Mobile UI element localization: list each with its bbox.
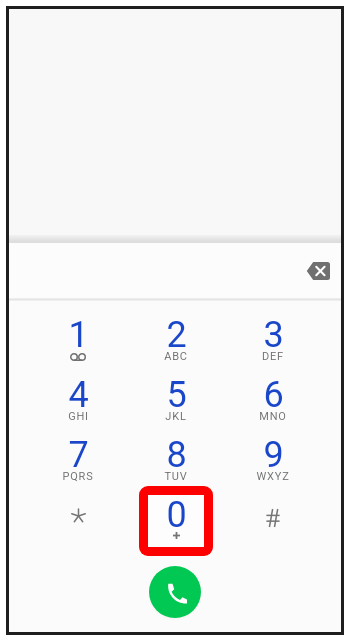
- staticText: 1: [68, 314, 89, 356]
- button[interactable]: 7: [30, 433, 126, 493]
- staticText: JKL: [165, 410, 187, 423]
- staticText: WXYZ: [256, 470, 290, 483]
- button[interactable]: 8: [128, 433, 224, 493]
- staticText: DEF: [262, 350, 284, 363]
- staticText: 3: [263, 314, 284, 356]
- button[interactable]: 4: [30, 373, 126, 433]
- button[interactable]: 5: [128, 373, 224, 433]
- button[interactable]: [225, 493, 321, 563]
- staticText: 2: [166, 314, 187, 356]
- button[interactable]: 2: [128, 313, 224, 373]
- button[interactable]: 3: [225, 313, 321, 373]
- staticText: MNO: [259, 410, 287, 423]
- button[interactable]: Call: [149, 566, 201, 618]
- button[interactable]: 9: [225, 433, 321, 493]
- button[interactable]: [30, 493, 126, 563]
- staticText: ABC: [164, 350, 188, 363]
- button[interactable]: 0: [128, 493, 224, 563]
- staticText: 8: [166, 434, 187, 476]
- staticText: 6: [263, 374, 284, 416]
- button[interactable]: 1: [30, 313, 126, 373]
- staticText: 4: [68, 374, 89, 416]
- button[interactable]: 6: [225, 373, 321, 433]
- staticText: 9: [263, 434, 284, 476]
- staticText: 7: [68, 434, 89, 476]
- staticText: GHI: [68, 410, 89, 423]
- staticText: 0: [166, 494, 187, 536]
- staticText: PQRS: [62, 470, 94, 483]
- staticText: TUV: [164, 470, 188, 483]
- staticText: 5: [166, 374, 187, 416]
- button[interactable]: Backspace: [298, 251, 338, 291]
